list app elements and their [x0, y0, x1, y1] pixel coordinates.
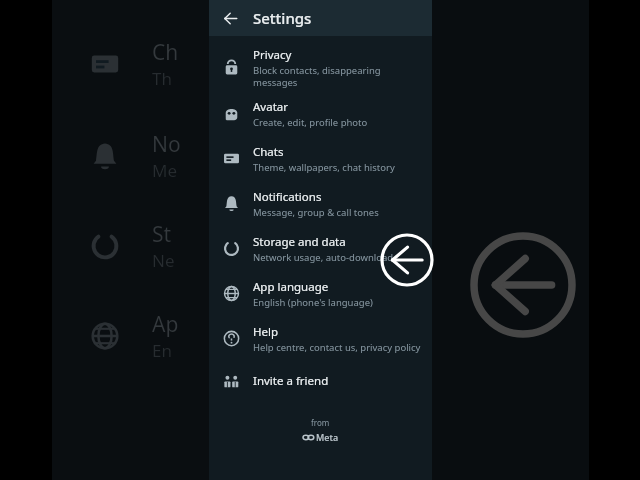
staticText: Block contacts, disappearing messages	[253, 64, 381, 89]
staticText: Invite a friend	[253, 373, 329, 389]
staticText: Avatar	[253, 99, 288, 115]
staticText: Help centre, contact us, privacy policy	[253, 341, 421, 354]
button[interactable]: Help	[209, 316, 432, 361]
button[interactable]: Storage and data	[209, 226, 432, 271]
staticText: English (phone's language)	[253, 296, 373, 309]
button[interactable]: Back	[217, 5, 243, 31]
staticText: Ne	[152, 249, 175, 272]
staticText: Me	[152, 159, 178, 182]
staticText: St	[152, 220, 172, 249]
staticText: Ch	[152, 38, 179, 67]
button[interactable]: App language	[209, 271, 432, 316]
staticText: Theme, wallpapers, chat history	[253, 161, 395, 174]
staticText: Help	[253, 324, 279, 340]
button[interactable]: Avatar	[209, 91, 432, 136]
staticText: Settings	[253, 8, 312, 28]
button[interactable]: Notifications	[209, 181, 432, 226]
staticText: En	[152, 339, 172, 362]
staticText: Message, group & call tones	[253, 206, 379, 219]
staticText: Th	[152, 67, 172, 90]
staticText: Create, edit, profile photo	[253, 116, 368, 129]
staticText: Chats	[253, 144, 284, 160]
staticText: App language	[253, 279, 329, 295]
staticText: Network usage, auto-download	[253, 251, 394, 264]
staticText: Privacy	[253, 47, 292, 63]
staticText: Storage and data	[253, 234, 346, 250]
button[interactable]: Privacy	[209, 44, 432, 91]
staticText: Meta	[316, 431, 339, 443]
staticText: from	[311, 417, 330, 428]
staticText: Ap	[152, 310, 179, 339]
staticText: Notifications	[253, 189, 322, 205]
staticText: No	[152, 130, 181, 159]
button[interactable]: Chats	[209, 136, 432, 181]
button[interactable]: Invite a friend	[209, 361, 432, 401]
